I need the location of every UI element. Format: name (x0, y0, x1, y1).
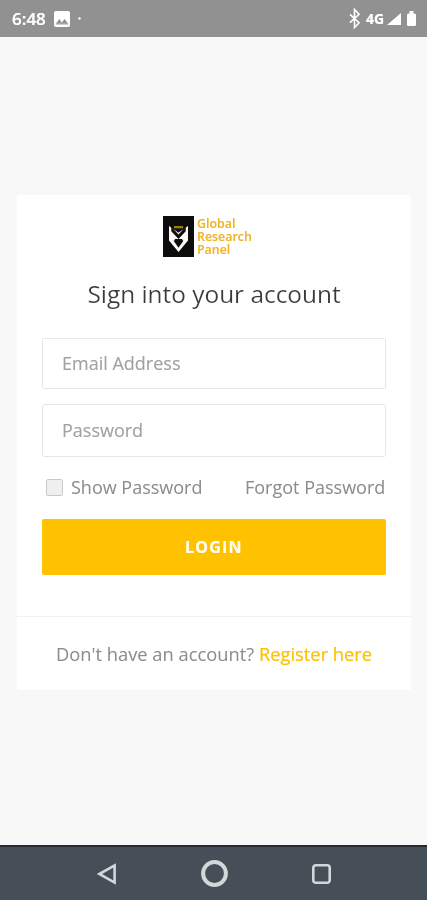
staticText: Password (62, 418, 144, 443)
staticText: Don't have an account? (56, 641, 259, 666)
staticText: Sign into your account (42, 277, 386, 310)
staticText: Email Address (62, 351, 181, 376)
button[interactable]: Back (80, 847, 134, 900)
staticText: Register here (259, 641, 373, 666)
staticText: 4G (366, 9, 385, 28)
staticText: Research (197, 228, 252, 241)
staticText: Show Password (71, 475, 203, 500)
button[interactable]: Email Address (42, 338, 386, 389)
button[interactable]: Recent apps (294, 847, 348, 900)
button[interactable]: Forgot Password (245, 475, 386, 500)
staticText: LOGIN (185, 536, 243, 558)
button[interactable]: Password (42, 404, 386, 457)
button[interactable]: Home (187, 847, 241, 900)
button[interactable]: Show Password (46, 475, 203, 500)
button[interactable]: LOGIN (42, 519, 386, 575)
staticText: Forgot Password (245, 475, 386, 500)
staticText: Global (197, 215, 236, 228)
staticText: Panel (197, 241, 231, 254)
button[interactable]: Don't have an account? (56, 641, 373, 666)
staticText: 6:48 (12, 7, 46, 30)
